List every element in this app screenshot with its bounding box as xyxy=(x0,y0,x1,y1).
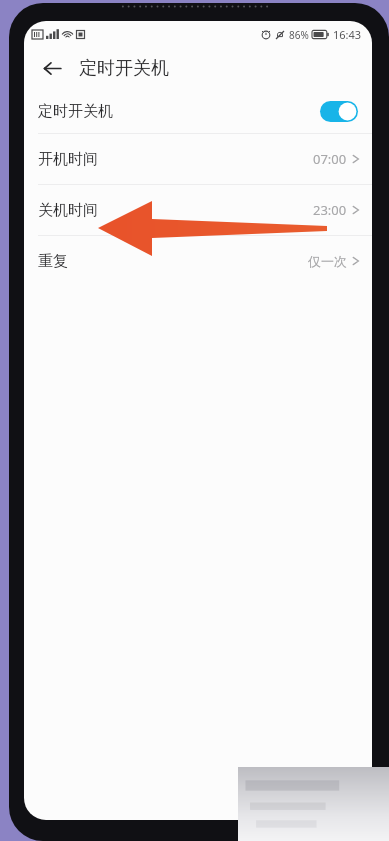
staticText: 86% xyxy=(289,28,309,42)
staticText: 重复 xyxy=(38,252,68,271)
button[interactable]: 定时开关机 xyxy=(24,89,372,133)
staticText: 定时开关机 xyxy=(79,57,169,80)
staticText: 16:43 xyxy=(333,27,362,42)
button[interactable]: 开机时间 xyxy=(24,134,372,184)
staticText: 仅一次 xyxy=(308,253,347,269)
staticText: 07:00 xyxy=(313,150,347,168)
staticText: 23:00 xyxy=(313,201,347,219)
button[interactable]: 重复 xyxy=(24,236,372,286)
button[interactable]: 关机时间 xyxy=(24,185,372,235)
button[interactable]: Back xyxy=(34,50,70,86)
staticText: 开机时间 xyxy=(38,150,98,169)
staticText: 定时开关机 xyxy=(38,102,113,121)
staticText: 关机时间 xyxy=(38,201,98,220)
